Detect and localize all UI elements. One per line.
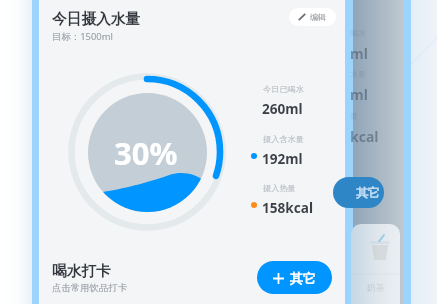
button[interactable]: 编辑 [289,8,336,26]
staticText: 摄入热量 [263,183,296,193]
staticText: 奶茶 [367,282,385,293]
staticText: 158kcal [262,198,313,217]
staticText: ml [350,85,368,104]
staticText: 今日摄入水量 [52,10,141,29]
staticText: 192ml [262,149,303,168]
staticText: 喝水 [350,28,366,38]
staticText: 目标：1500ml [52,30,113,43]
staticText: 其它 [356,185,380,200]
staticText: 水量 [350,69,366,79]
staticText: 量 [350,111,358,121]
staticText: 编辑 [310,12,326,22]
button[interactable]: 其它 [257,261,332,294]
staticText: 30% [114,132,178,174]
staticText: 260ml [262,99,303,118]
staticText: ml [350,44,368,63]
staticText: 喝水打卡 [52,262,111,281]
staticText: 点击常用饮品打卡 [52,282,128,294]
staticText: 今日已喝水 [263,84,304,94]
staticText: kcal [350,127,379,146]
staticText: 摄入含水量 [263,134,304,144]
staticText: 其它 [290,270,316,286]
